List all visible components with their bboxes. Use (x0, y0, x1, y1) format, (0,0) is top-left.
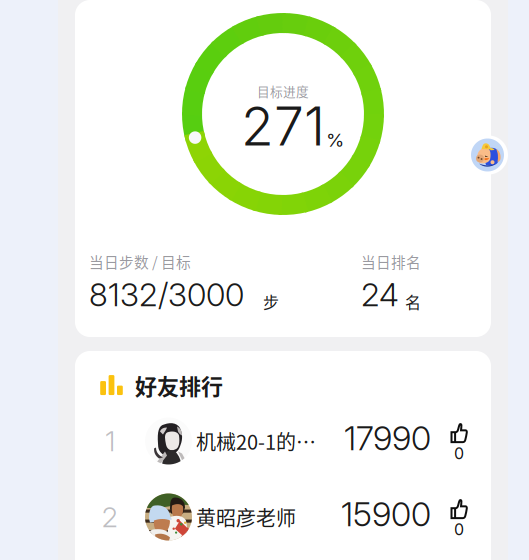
button[interactable]: 2 (75, 479, 491, 555)
staticText: 8132/3000 (89, 275, 244, 314)
staticText: 1 (105, 424, 115, 458)
staticText: 当日步数 / 目标 (89, 251, 191, 272)
staticText: 名 (405, 290, 421, 313)
staticText: 步 (263, 290, 279, 313)
staticText: 2 (101, 500, 118, 534)
staticText: 黄昭彦老师 (196, 502, 296, 531)
staticText: % (326, 129, 344, 151)
staticText: 0 (454, 520, 464, 539)
staticText: 271 (241, 94, 325, 158)
staticText: 好友排行 (135, 369, 223, 401)
staticText: 当日排名 (361, 251, 421, 272)
staticText: 0 (454, 444, 464, 463)
staticText: 目标进度 (257, 82, 309, 100)
staticText: 15900 (341, 494, 431, 534)
staticText: 17990 (344, 418, 431, 458)
button[interactable]: 1 (75, 403, 491, 479)
staticText: 机械20-1的… (196, 426, 316, 455)
button[interactable]: Mascot (458, 135, 508, 174)
staticText: 24 (361, 275, 399, 314)
